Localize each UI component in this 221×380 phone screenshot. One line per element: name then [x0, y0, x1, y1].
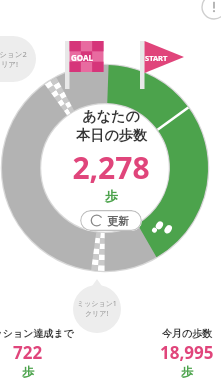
staticText: クリア!: [0, 59, 19, 69]
staticText: ミッション2: [0, 49, 27, 59]
button[interactable]: Notice: [201, 0, 221, 20]
staticText: START: [145, 53, 168, 63]
staticText: 更新: [107, 214, 129, 228]
staticText: 今月の歩数: [162, 327, 213, 340]
button[interactable]: ミッション2: [0, 36, 36, 82]
staticText: 2,278: [72, 147, 150, 188]
staticText: ミッション達成まで: [0, 327, 74, 340]
staticText: クリア!: [85, 309, 109, 319]
staticText: 歩: [22, 364, 34, 379]
staticText: 本日の歩数: [76, 127, 147, 145]
other: Start flag: [137, 38, 187, 90]
staticText: 18,995: [160, 341, 214, 364]
staticText: あなたの: [82, 108, 140, 126]
other: Goal flag: [62, 38, 106, 90]
staticText: 歩: [105, 188, 118, 204]
staticText: 722: [13, 341, 43, 364]
staticText: ミッション1: [77, 299, 117, 309]
button[interactable]: 更新: [80, 210, 142, 231]
staticText: 歩: [181, 364, 193, 379]
staticText: GOAL: [71, 52, 93, 63]
button[interactable]: ミッション1: [73, 285, 121, 333]
